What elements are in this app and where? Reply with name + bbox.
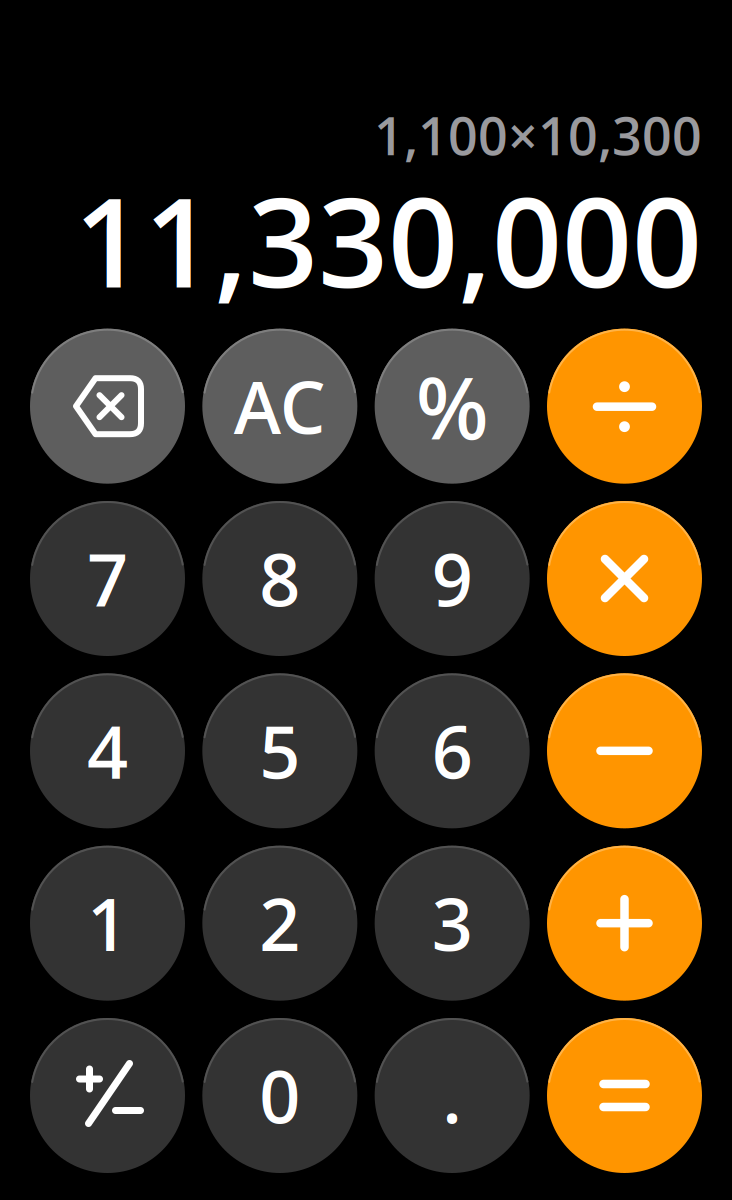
button[interactable]: % <box>375 329 530 484</box>
button[interactable]: 0 <box>202 1018 357 1173</box>
staticText: 6 <box>432 702 473 800</box>
button[interactable]: . <box>375 1018 530 1173</box>
button[interactable]: 6 <box>375 673 530 828</box>
staticText: . <box>442 1046 462 1145</box>
staticText: 3 <box>432 874 473 972</box>
staticText: AC <box>234 357 326 455</box>
staticText: 0 <box>259 1046 300 1145</box>
button[interactable]: AC <box>202 329 357 484</box>
staticText: 4 <box>87 702 128 800</box>
button[interactable]: Delete <box>30 329 185 484</box>
button[interactable]: Equals <box>547 1018 702 1173</box>
staticText: 2 <box>259 874 300 972</box>
button[interactable]: Plus minus <box>30 1018 185 1173</box>
staticText: 7 <box>87 529 128 628</box>
button[interactable]: Subtract <box>547 673 702 828</box>
staticText: 1 <box>87 874 128 972</box>
button[interactable]: 9 <box>375 501 530 656</box>
staticText: 9 <box>432 529 473 628</box>
button[interactable]: 2 <box>202 846 357 1001</box>
button[interactable]: Add <box>547 846 702 1001</box>
staticText: 11,330,000 <box>74 156 702 324</box>
staticText: 8 <box>259 529 300 628</box>
button[interactable]: 5 <box>202 673 357 828</box>
button[interactable]: Multiply <box>547 501 702 656</box>
button[interactable]: 3 <box>375 846 530 1001</box>
button[interactable]: 4 <box>30 673 185 828</box>
button[interactable]: 7 <box>30 501 185 656</box>
button[interactable]: Divide <box>547 329 702 484</box>
staticText: 1,100×10,300 <box>374 100 702 170</box>
staticText: % <box>416 348 489 464</box>
button[interactable]: 1 <box>30 846 185 1001</box>
button[interactable]: 8 <box>202 501 357 656</box>
staticText: 5 <box>259 702 300 800</box>
